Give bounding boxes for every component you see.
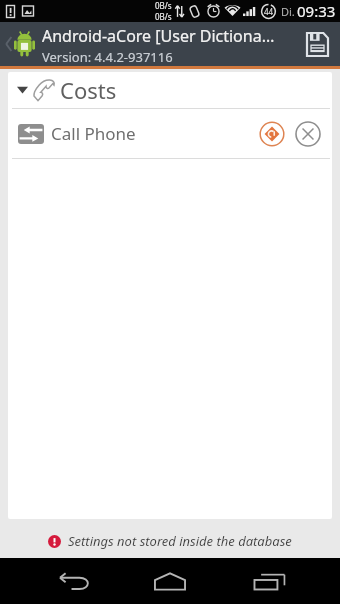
staticText: Settings not stored inside the database [68, 532, 292, 550]
button[interactable]: Home [125, 558, 215, 604]
staticText: 0B/s [155, 0, 172, 11]
button[interactable]: Locate [254, 116, 290, 152]
button[interactable]: Back [18, 558, 108, 604]
button[interactable]: Save [294, 22, 340, 66]
button[interactable]: Costs [8, 72, 332, 108]
staticText: Version: 4.4.2-937116 [42, 48, 173, 66]
button[interactable]: Navigate up [0, 22, 40, 66]
button[interactable]: Call Phone [8, 109, 332, 158]
staticText: Call Phone [51, 122, 136, 145]
button[interactable]: Remove [290, 116, 326, 152]
staticText: 44 [264, 6, 274, 17]
staticText: 09:33 [297, 1, 336, 21]
staticText: Di. [281, 4, 295, 19]
staticText: Android-aCore [User Dictiona… [42, 25, 275, 47]
staticText: 0B/s [155, 11, 172, 22]
button[interactable]: Recent apps [233, 558, 323, 604]
staticText: Costs [60, 75, 117, 105]
